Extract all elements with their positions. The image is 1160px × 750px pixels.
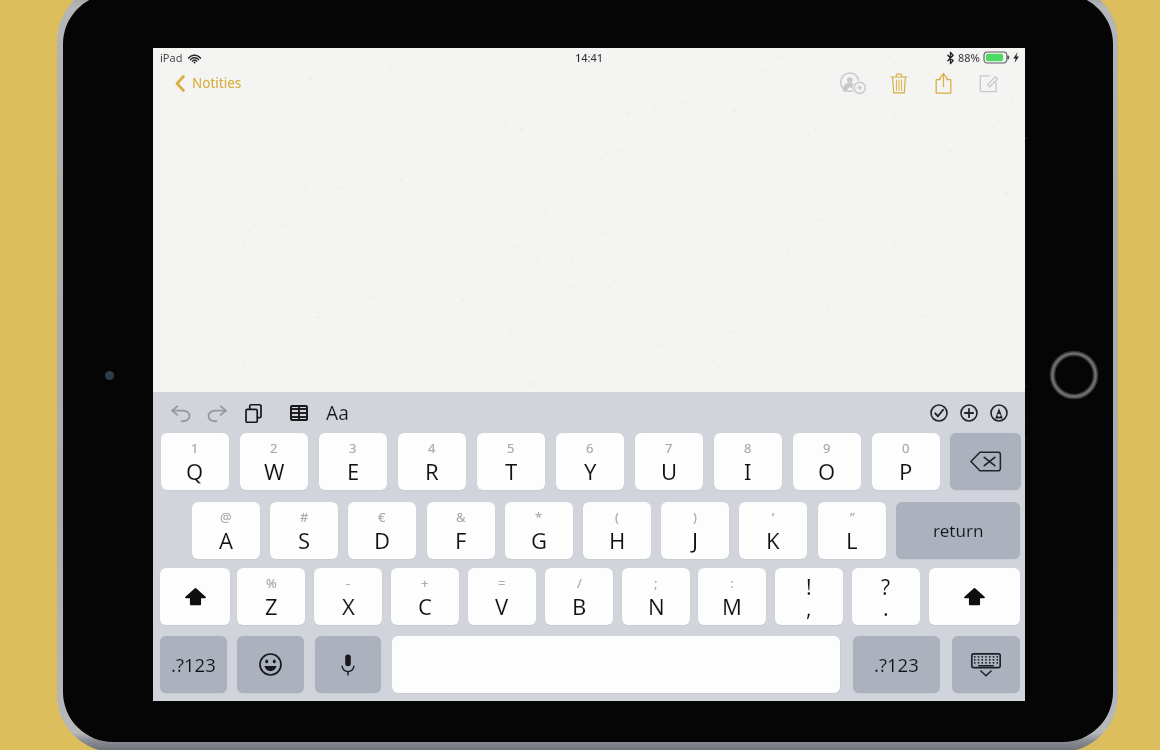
- button[interactable]: +: [391, 568, 459, 625]
- button[interactable]: Add People: [831, 67, 876, 99]
- button[interactable]: ?: [852, 568, 920, 625]
- staticText: 4: [428, 439, 436, 457]
- button[interactable]: 2: [240, 433, 308, 490]
- button[interactable]: 9: [793, 433, 861, 490]
- staticText: Notities: [192, 74, 242, 92]
- button[interactable]: Backspace: [950, 433, 1021, 490]
- button[interactable]: (: [583, 502, 651, 559]
- button[interactable]: -: [314, 568, 382, 625]
- button[interactable]: Add attachment: [954, 393, 984, 433]
- button[interactable]: Emoji: [237, 636, 304, 693]
- button[interactable]: ’: [739, 502, 807, 559]
- staticText: B: [572, 591, 587, 621]
- button[interactable]: Delete: [876, 67, 921, 99]
- button[interactable]: Undo: [164, 393, 199, 433]
- button[interactable]: Markup: [984, 393, 1014, 433]
- button[interactable]: Notities: [175, 74, 242, 92]
- button[interactable]: ”: [818, 502, 886, 559]
- button[interactable]: 7: [635, 433, 703, 490]
- button[interactable]: Text format: [317, 393, 357, 433]
- staticText: J: [692, 525, 699, 555]
- staticText: 1: [191, 439, 199, 457]
- button[interactable]: =: [468, 568, 536, 625]
- staticText: 8: [744, 439, 752, 457]
- button[interactable]: €: [348, 502, 416, 559]
- staticText: H: [609, 525, 626, 555]
- staticText: P: [899, 456, 913, 486]
- staticText: R: [425, 456, 439, 486]
- staticText: ’: [772, 508, 775, 526]
- staticText: %: [266, 574, 277, 592]
- button[interactable]: &: [427, 502, 495, 559]
- staticText: 88%: [958, 50, 980, 65]
- staticText: U: [661, 456, 678, 486]
- staticText: !: [806, 573, 812, 602]
- button[interactable]: 5: [477, 433, 545, 490]
- staticText: K: [766, 525, 780, 555]
- staticText: G: [531, 525, 548, 555]
- staticText: €: [378, 508, 386, 526]
- button[interactable]: Hide keyboard: [952, 636, 1020, 693]
- staticText: C: [418, 591, 432, 621]
- staticText: Q: [186, 456, 204, 486]
- staticText: F: [455, 525, 467, 555]
- button[interactable]: ): [661, 502, 729, 559]
- button[interactable]: 6: [556, 433, 624, 490]
- button[interactable]: Home: [1046, 347, 1102, 403]
- button[interactable]: Compose: [966, 67, 1011, 99]
- button[interactable]: /: [545, 568, 613, 625]
- button[interactable]: !: [775, 568, 843, 625]
- staticText: W: [264, 456, 285, 486]
- staticText: M: [722, 591, 742, 621]
- button[interactable]: 4: [398, 433, 466, 490]
- staticText: 9: [823, 439, 831, 457]
- staticText: S: [298, 525, 311, 555]
- button[interactable]: Redo: [199, 393, 234, 433]
- button[interactable]: Dictation: [315, 636, 381, 693]
- button[interactable]: return: [896, 502, 1020, 559]
- button[interactable]: Copy: [234, 393, 272, 433]
- staticText: D: [374, 525, 391, 555]
- staticText: 0: [902, 439, 910, 457]
- staticText: iPad: [160, 50, 183, 65]
- staticText: +: [421, 574, 429, 592]
- staticText: A: [219, 525, 234, 555]
- staticText: L: [846, 525, 858, 555]
- staticText: &: [456, 508, 466, 526]
- button[interactable]: %: [237, 568, 305, 625]
- staticText: ”: [850, 508, 855, 526]
- staticText: Y: [584, 456, 597, 486]
- button[interactable]: Table: [281, 393, 317, 433]
- staticText: 2: [270, 439, 278, 457]
- button[interactable]: .?123: [160, 636, 227, 693]
- staticText: 6: [586, 439, 594, 457]
- staticText: :: [730, 574, 734, 592]
- staticText: I: [744, 456, 752, 486]
- button[interactable]: #: [270, 502, 338, 559]
- staticText: =: [498, 574, 506, 592]
- staticText: .?123: [171, 652, 216, 677]
- button[interactable]: 3: [319, 433, 387, 490]
- button[interactable]: Shift: [929, 568, 1020, 625]
- staticText: /: [577, 574, 582, 592]
- staticText: 14:41: [575, 50, 604, 65]
- staticText: Z: [265, 591, 278, 621]
- staticText: 5: [507, 439, 515, 457]
- button[interactable]: 8: [714, 433, 782, 490]
- staticText: V: [495, 591, 509, 621]
- button[interactable]: 1: [161, 433, 229, 490]
- staticText: 7: [665, 439, 673, 457]
- button[interactable]: Share: [921, 67, 966, 99]
- button[interactable]: ;: [622, 568, 690, 625]
- button[interactable]: .?123: [853, 636, 940, 693]
- staticText: X: [342, 591, 355, 621]
- button[interactable]: *: [505, 502, 573, 559]
- staticText: ?: [881, 573, 891, 602]
- button[interactable]: 0: [872, 433, 940, 490]
- button[interactable]: Shift: [160, 568, 230, 625]
- button[interactable]: Checklist: [924, 393, 954, 433]
- button[interactable]: @: [192, 502, 260, 559]
- staticText: .?123: [874, 652, 919, 677]
- button[interactable]: :: [698, 568, 766, 625]
